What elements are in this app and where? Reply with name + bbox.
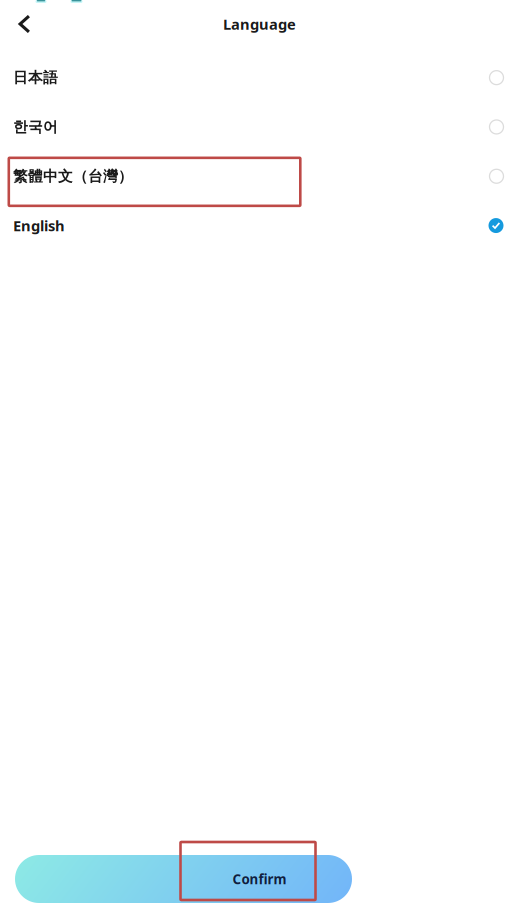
button[interactable]: 한국어 (0, 102, 519, 152)
staticText: 한국어 (13, 118, 58, 136)
button[interactable]: Confirm (15, 855, 504, 903)
button[interactable]: 日本語 (0, 53, 519, 102)
button[interactable]: English (0, 201, 519, 250)
button[interactable]: Back (0, 6, 30, 46)
staticText: Language (223, 14, 296, 34)
button[interactable]: 繁體中文（台灣） (0, 152, 519, 201)
staticText: English (13, 216, 65, 235)
staticText: 日本語 (13, 69, 58, 87)
staticText: Confirm (232, 870, 286, 888)
staticText: 繁體中文（台灣） (13, 167, 133, 185)
